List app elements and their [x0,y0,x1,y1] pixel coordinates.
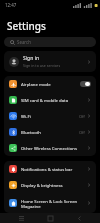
staticText: Airplane mode [21,81,80,87]
button[interactable]: Home [42,213,58,223]
staticText: Wi-Fi [21,113,79,119]
button[interactable]: Recents [13,213,29,223]
staticText: SIM card & mobile data [21,97,87,103]
staticText: Settings [7,19,46,33]
staticText: Notifications & status bar [21,166,87,172]
button[interactable]: Search [4,37,96,47]
staticText: Off [79,130,85,135]
button[interactable]: Wi-Fi [4,108,96,124]
staticText: Display & brightness [21,182,87,188]
staticText: Bluetooth [21,129,79,135]
button[interactable]: Bluetooth [4,124,96,140]
staticText: Sign in [23,55,40,62]
staticText: Search [17,39,31,45]
button[interactable]: Sign in [4,51,96,72]
button[interactable]: Notifications & status bar [4,161,96,177]
button[interactable]: Back [71,213,87,223]
staticText: Sign in to use services [23,63,61,68]
staticText: 12:47 [5,2,17,8]
button[interactable]: Other Wireless Connections [4,140,96,156]
staticText: Home Screen & Lock Screen Magazine [21,198,87,209]
staticText: Off [79,114,85,119]
button[interactable]: Display & brightness [4,177,96,193]
button[interactable]: Airplane mode [4,76,96,92]
button[interactable]: Home Screen & Lock Screen Magazine [4,193,96,213]
staticText: Other Wireless Connections [21,145,87,151]
button[interactable]: Airplane mode toggle [80,81,91,87]
button[interactable]: SIM card & mobile data [4,92,96,108]
